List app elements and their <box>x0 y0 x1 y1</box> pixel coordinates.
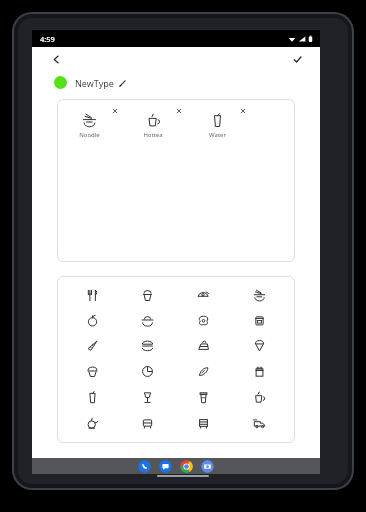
button[interactable]: Food icon 8 <box>231 311 287 330</box>
button[interactable]: Chrome <box>180 460 193 473</box>
button[interactable]: Food icon 16 <box>231 361 287 381</box>
button[interactable]: Food icon 9 <box>65 336 120 355</box>
staticText: Water <box>209 131 226 139</box>
staticText: NewType <box>75 77 114 89</box>
button[interactable]: Food icon 17 <box>65 387 120 407</box>
button[interactable]: Camera <box>201 460 214 473</box>
button[interactable]: Water <box>209 113 226 139</box>
button[interactable]: Food icon 24 <box>231 413 287 433</box>
staticText: Hottea <box>143 131 163 139</box>
button[interactable]: Remove Water <box>238 106 247 115</box>
button[interactable]: Remove Hottea <box>174 106 183 115</box>
button[interactable]: Food icon 2 <box>120 286 175 305</box>
button[interactable]: Food icon 13 <box>65 361 120 381</box>
button[interactable]: Back <box>48 51 64 67</box>
button[interactable]: Food icon 15 <box>175 361 231 381</box>
button[interactable]: Noodle <box>79 113 100 139</box>
button[interactable]: Food icon 3 <box>175 286 231 305</box>
button[interactable]: Remove Noodle <box>110 106 119 115</box>
button[interactable]: Food icon 11 <box>175 336 231 355</box>
button[interactable]: Food icon 1 <box>65 286 120 305</box>
button[interactable]: NewType <box>75 77 126 89</box>
button[interactable]: Food icon 6 <box>120 311 175 330</box>
button[interactable]: Confirm <box>289 51 305 67</box>
button[interactable]: Food icon 7 <box>175 311 231 330</box>
button[interactable]: Hottea <box>143 113 163 139</box>
button[interactable] <box>54 76 67 89</box>
button[interactable]: Food icon 14 <box>120 361 175 381</box>
staticText: Noodle <box>79 131 100 139</box>
button[interactable]: Food icon 4 <box>231 286 287 305</box>
button[interactable]: Messages <box>159 460 172 473</box>
button[interactable]: Food icon 19 <box>175 387 231 407</box>
staticText: 4:59 <box>40 34 55 44</box>
button[interactable]: Food icon 18 <box>120 387 175 407</box>
button[interactable]: Food icon 10 <box>120 336 175 355</box>
button[interactable]: Food icon 20 <box>231 387 287 407</box>
button[interactable]: Phone <box>138 460 151 473</box>
button[interactable]: Food icon 22 <box>120 413 175 433</box>
button[interactable]: Food icon 5 <box>65 311 120 330</box>
button[interactable]: Food icon 23 <box>175 413 231 433</box>
button[interactable]: Food icon 12 <box>231 336 287 355</box>
button[interactable]: Food icon 21 <box>65 413 120 433</box>
